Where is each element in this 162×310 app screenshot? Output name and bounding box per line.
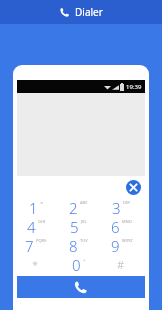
staticText: ∞ <box>40 200 44 205</box>
button[interactable]: 9 <box>102 236 145 255</box>
staticText: WXYZ <box>122 238 133 243</box>
button[interactable]: Delete <box>126 180 141 195</box>
staticText: JKL <box>81 219 87 224</box>
button[interactable]: 0 <box>59 255 102 274</box>
button[interactable]: 6 <box>102 217 145 236</box>
staticText: + <box>83 257 86 262</box>
staticText: 8 <box>69 236 78 255</box>
staticText: 6 <box>111 217 120 236</box>
staticText: 1 <box>29 198 38 217</box>
staticText: ABC <box>80 200 88 205</box>
button[interactable]: 2 <box>59 198 102 217</box>
button[interactable]: 5 <box>59 217 102 236</box>
button[interactable]: 1 <box>17 198 59 217</box>
staticText: MNO <box>122 219 132 224</box>
staticText: 7 <box>25 236 34 255</box>
button[interactable]: # <box>102 255 145 274</box>
staticText: PQRS <box>36 238 47 243</box>
button[interactable]: 4 <box>17 217 59 236</box>
staticText: 4 <box>27 217 36 236</box>
staticText: TUV <box>80 238 88 243</box>
button[interactable]: * <box>17 255 59 274</box>
staticText: 5 <box>70 217 79 236</box>
staticText: 3 <box>112 198 121 217</box>
button[interactable]: Call <box>59 276 102 298</box>
staticText: * <box>32 257 39 272</box>
staticText: 9 <box>111 236 120 255</box>
staticText: DEF <box>123 200 131 205</box>
button[interactable]: 8 <box>59 236 102 255</box>
staticText: 19:39 <box>126 83 142 91</box>
staticText: GHI <box>38 219 46 224</box>
button[interactable]: 7 <box>17 236 59 255</box>
button[interactable]: 3 <box>102 198 145 217</box>
other: Dialer <box>59 7 70 18</box>
staticText: Dialer <box>75 5 103 19</box>
button[interactable]: Dialer <box>0 0 162 24</box>
staticText: 2 <box>69 198 78 217</box>
staticText: 0 <box>72 255 81 274</box>
staticText: # <box>117 257 125 272</box>
